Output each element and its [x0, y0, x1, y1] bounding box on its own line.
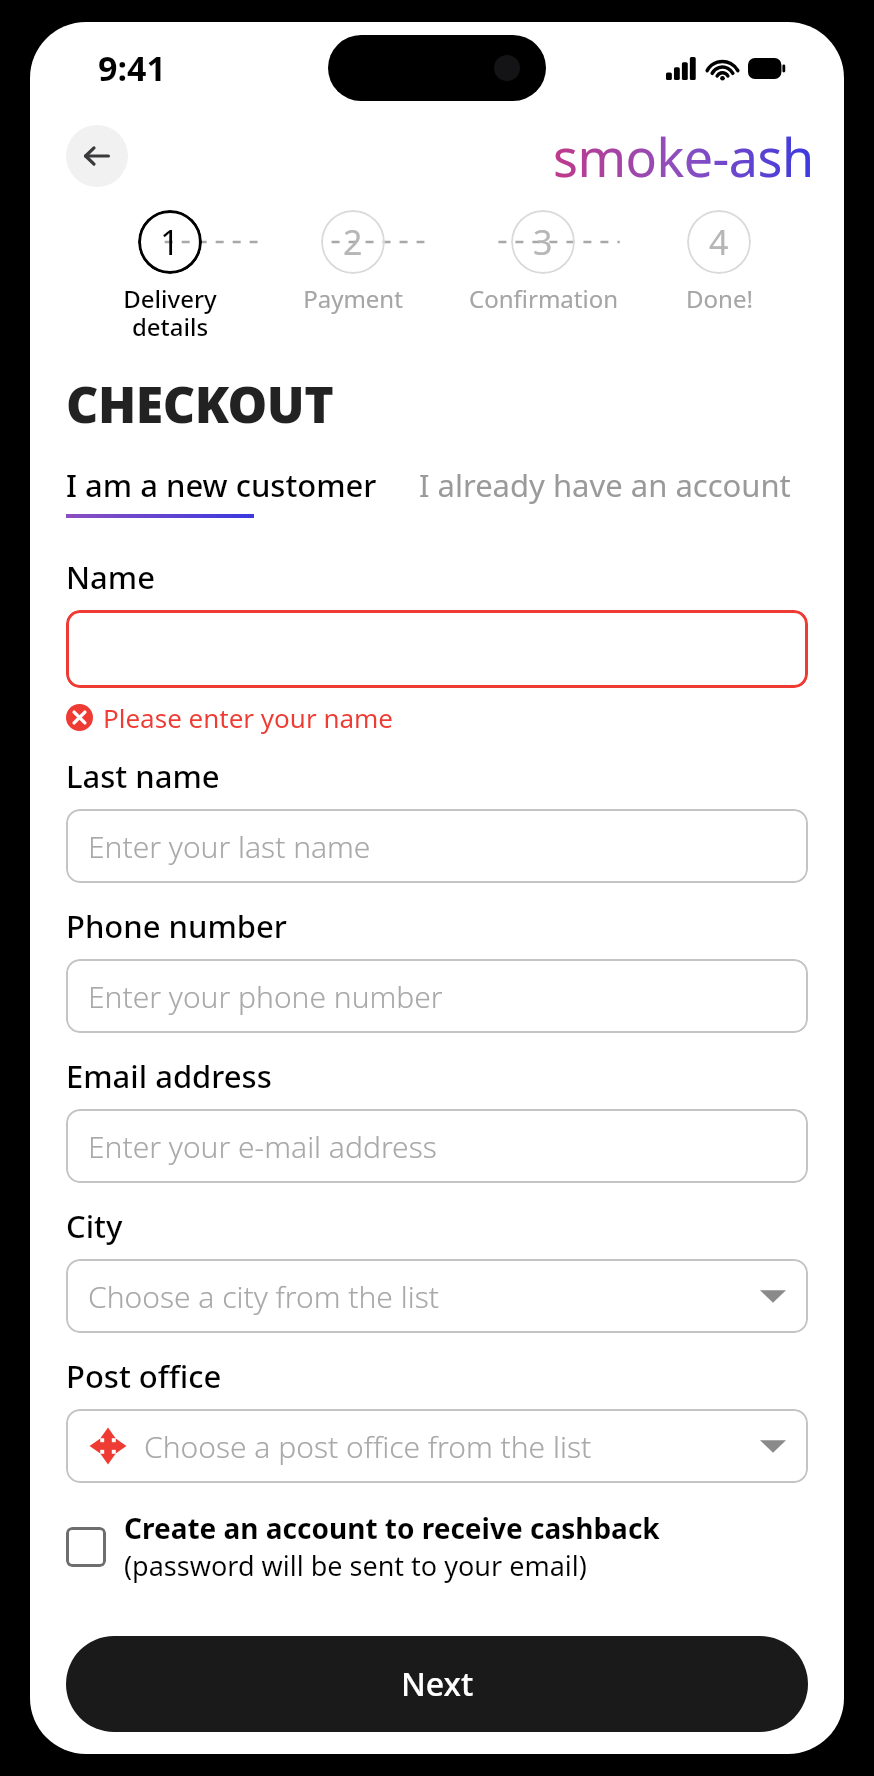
button[interactable]	[66, 610, 808, 688]
staticText: Please enter your name	[103, 700, 394, 735]
button[interactable]: 2	[261, 210, 444, 315]
staticText: 3	[533, 219, 553, 265]
staticText: Next	[401, 1662, 474, 1706]
button[interactable]: Create an account to receive cashback	[66, 1509, 660, 1584]
staticText: Email address	[66, 1055, 272, 1097]
button[interactable]: I am a new customer	[66, 464, 377, 518]
staticText: Phone number	[66, 905, 287, 947]
staticText: Enter your last name	[88, 826, 786, 867]
staticText: Confirmation	[469, 282, 618, 315]
button[interactable]: Back	[66, 125, 128, 187]
staticText: Payment	[303, 282, 403, 315]
button[interactable]: I already have an account	[419, 464, 791, 506]
staticText: 9:41	[98, 45, 166, 91]
staticText: I am a new customer	[66, 464, 377, 506]
button[interactable]: 3	[444, 210, 642, 315]
staticText: 4	[709, 219, 729, 265]
button[interactable]: Choose a post office from the list	[66, 1409, 808, 1483]
button[interactable]: Next	[66, 1636, 808, 1732]
staticText: 1	[160, 219, 180, 265]
staticText: Choose a city from the list	[88, 1276, 760, 1317]
other: Open list	[760, 1287, 786, 1305]
button[interactable]: Enter your phone number	[66, 959, 808, 1033]
staticText: Name	[66, 556, 155, 598]
staticText: (password will be sent to your email)	[124, 1547, 587, 1584]
staticText: CHECKOUT	[66, 370, 334, 438]
staticText: Choose a post office from the list	[144, 1426, 760, 1467]
staticText: Create an account to receive cashback	[124, 1509, 660, 1547]
button[interactable]: 4	[642, 210, 796, 315]
button[interactable]: Enter your e-mail address	[66, 1109, 808, 1183]
button[interactable]: Choose a city from the list	[66, 1259, 808, 1333]
button[interactable]: 1	[78, 210, 261, 340]
staticText: City	[66, 1205, 123, 1247]
button[interactable]: smoke-ash	[553, 121, 814, 192]
other: Open list	[760, 1437, 786, 1455]
staticText: Enter your e-mail address	[88, 1126, 786, 1167]
staticText: Last name	[66, 755, 220, 797]
staticText: 2	[343, 219, 363, 265]
staticText: Enter your phone number	[88, 976, 786, 1017]
staticText: Done!	[686, 282, 753, 315]
staticText: Post office	[66, 1355, 222, 1397]
button[interactable]: Enter your last name	[66, 809, 808, 883]
staticText: Delivery details	[123, 282, 217, 340]
